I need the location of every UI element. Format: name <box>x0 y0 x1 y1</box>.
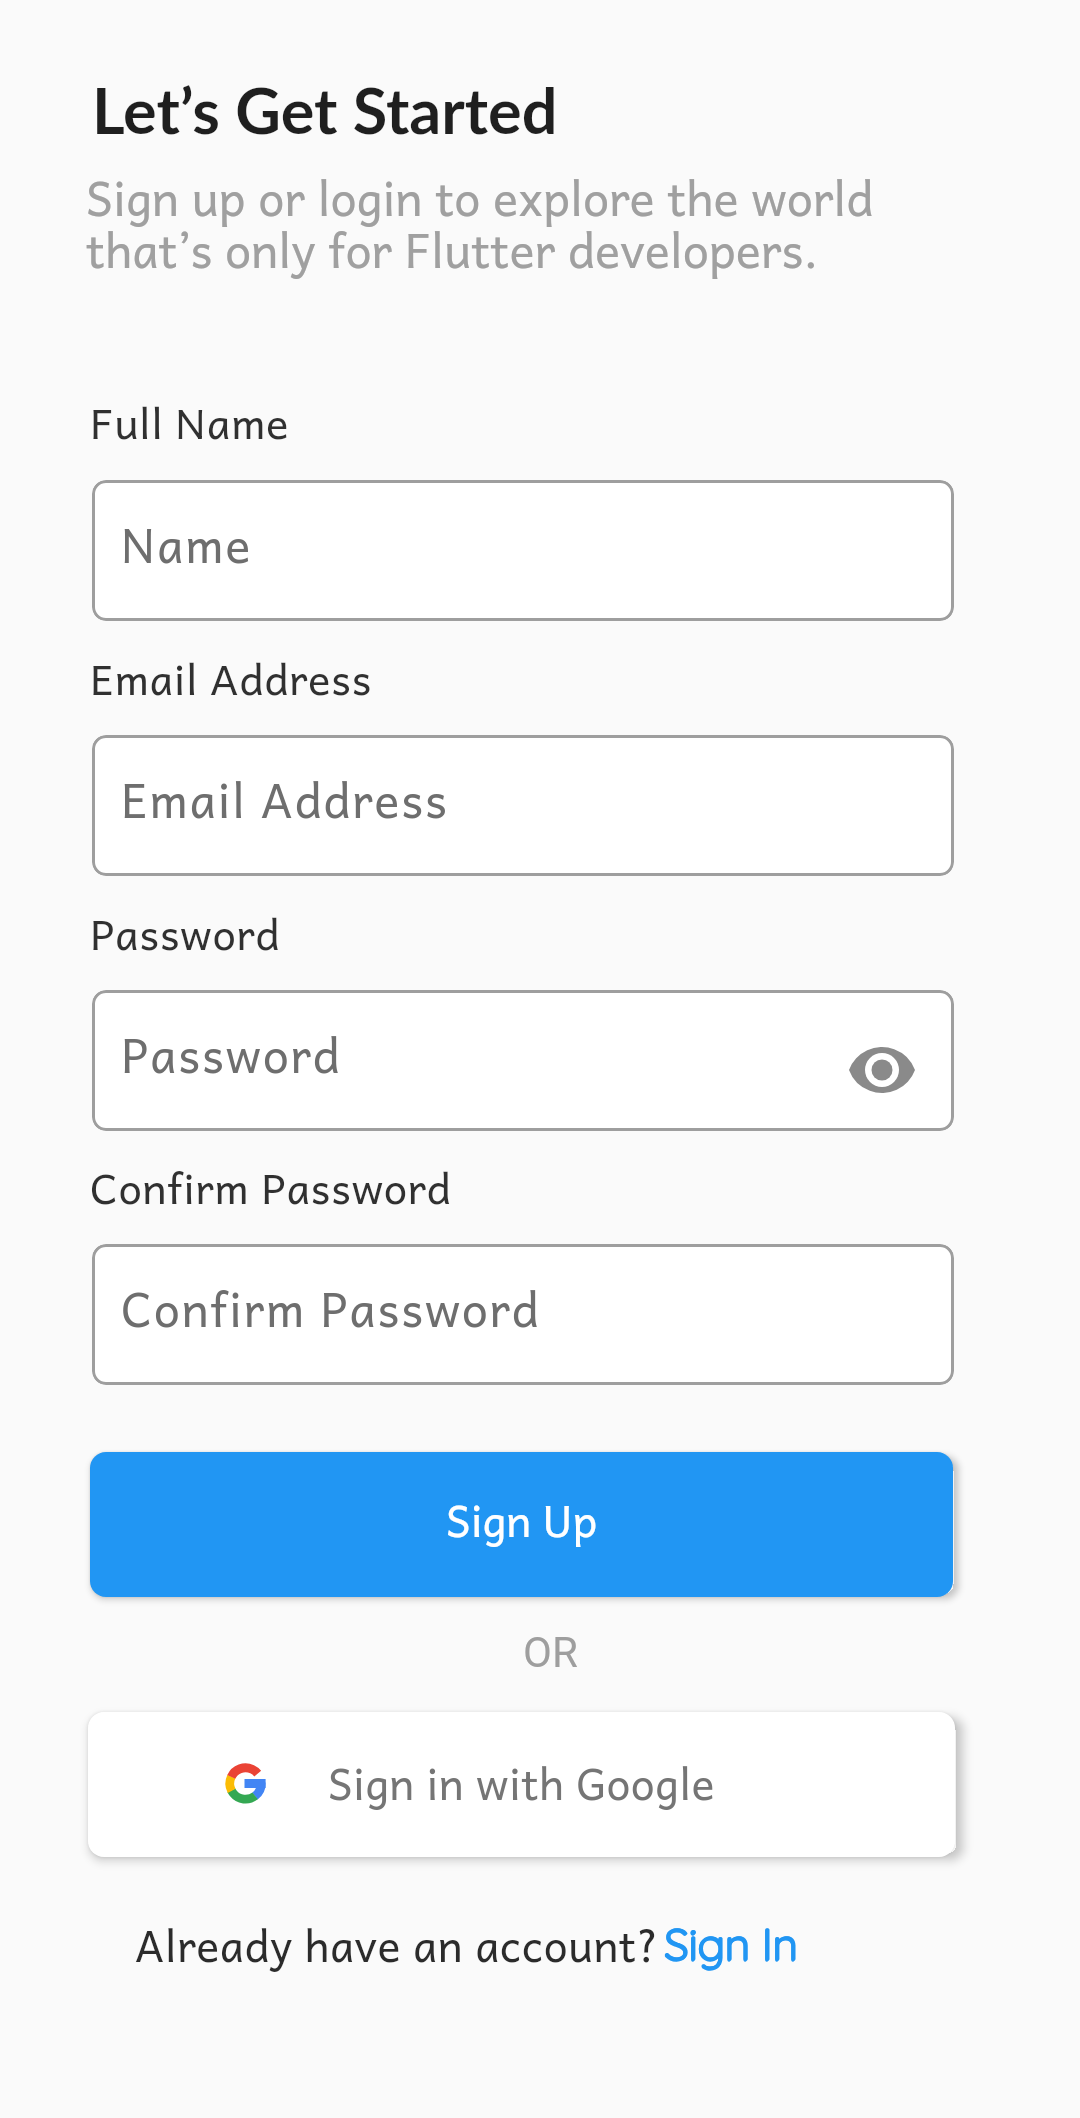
staticText: Full Name <box>90 388 290 456</box>
staticText: Password <box>90 899 281 967</box>
button[interactable]: Sign In <box>664 1916 798 1971</box>
staticText: Let’s Get Started <box>92 72 558 148</box>
staticText: Email Address <box>90 644 372 712</box>
button[interactable] <box>92 735 954 876</box>
button[interactable] <box>88 1712 955 1857</box>
staticText: that’s only for Flutter developers. <box>86 211 819 287</box>
staticText: Password <box>121 1016 342 1092</box>
button[interactable] <box>849 1047 915 1093</box>
staticText: Sign In <box>664 1917 798 1972</box>
staticText: Confirm Password <box>90 1153 452 1221</box>
staticText: OR <box>523 1628 578 1677</box>
button[interactable] <box>92 1244 954 1385</box>
staticText: Sign Up <box>446 1485 598 1554</box>
button[interactable]: Sign Up <box>90 1452 953 1597</box>
staticText: Sign In <box>664 1916 798 1971</box>
staticText: Name <box>121 506 253 582</box>
button[interactable] <box>92 480 954 621</box>
staticText: Already have an account? <box>135 1910 660 1979</box>
staticText: Sign In <box>665 1916 799 1971</box>
staticText: Sign up or login to explore the world <box>86 159 874 235</box>
staticText: Confirm Password <box>121 1270 541 1346</box>
staticText: Email Address <box>121 761 449 837</box>
button[interactable] <box>92 990 954 1131</box>
staticText: Sign in with Google <box>328 1748 715 1817</box>
